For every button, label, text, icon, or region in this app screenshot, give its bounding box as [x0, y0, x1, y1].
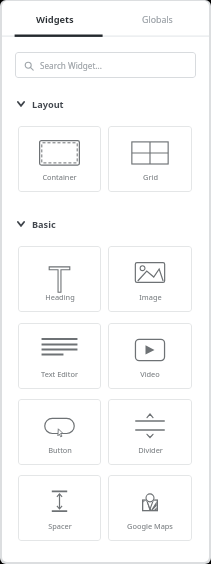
button[interactable]: Heading: [18, 246, 101, 312]
staticText: Spacer: [48, 521, 72, 531]
button[interactable]: Google Maps: [108, 475, 192, 541]
staticText: Globals: [142, 14, 173, 26]
button[interactable]: Image: [108, 246, 192, 312]
staticText: Search Widget...: [40, 60, 102, 71]
button[interactable]: Button: [18, 399, 101, 465]
button[interactable]: Globals: [106, 1, 209, 38]
button[interactable]: Grid: [108, 126, 192, 192]
staticText: Grid: [143, 172, 158, 182]
button[interactable]: Container: [18, 126, 101, 192]
staticText: Heading: [45, 292, 75, 302]
button[interactable]: Text Editor: [18, 323, 101, 389]
staticText: Basic: [32, 218, 56, 230]
staticText: Image: [139, 292, 162, 302]
button[interactable]: Video: [108, 323, 192, 389]
button[interactable]: Basic: [17, 218, 209, 230]
staticText: Divider: [138, 445, 163, 455]
staticText: Container: [42, 172, 77, 182]
staticText: Widgets: [36, 13, 74, 26]
button[interactable]: Layout: [17, 98, 209, 110]
button[interactable]: Divider: [108, 399, 192, 465]
staticText: Text Editor: [41, 369, 78, 379]
staticText: Google Maps: [127, 521, 173, 531]
staticText: Layout: [32, 98, 64, 110]
staticText: Button: [48, 445, 72, 455]
staticText: Video: [140, 369, 160, 379]
button[interactable]: Search Widget...: [15, 52, 196, 78]
button[interactable]: Spacer: [18, 475, 101, 541]
button[interactable]: Widgets: [4, 1, 106, 38]
